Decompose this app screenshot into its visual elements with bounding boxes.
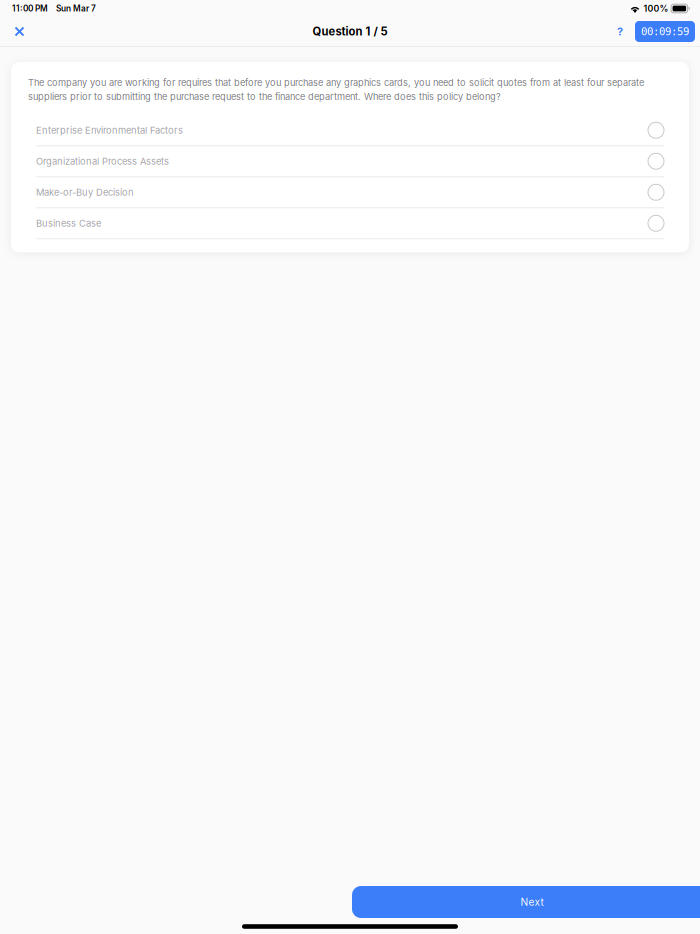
staticText: Business Case <box>36 218 101 229</box>
staticText: 00:09:59 <box>641 25 689 38</box>
button[interactable]: Help <box>610 18 630 44</box>
staticText: Make-or-Buy Decision <box>36 187 134 198</box>
button[interactable]: Business Case <box>36 208 664 239</box>
button[interactable]: Organizational Process Assets <box>36 146 664 177</box>
button[interactable]: Close <box>8 17 31 45</box>
staticText: Organizational Process Assets <box>36 156 169 167</box>
staticText: Question 1 / 5 <box>312 25 387 38</box>
button[interactable]: Enterprise Environmental Factors <box>36 115 664 146</box>
staticText: 11:00 PM <box>12 3 48 13</box>
button[interactable]: 00:09:59 <box>635 21 695 42</box>
staticText: Enterprise Environmental Factors <box>36 125 183 136</box>
staticText: ? <box>617 25 623 38</box>
staticText: The company you are working for requires… <box>28 77 644 102</box>
staticText: 100% <box>644 3 669 14</box>
staticText: Sun Mar 7 <box>56 3 96 13</box>
button[interactable]: Make-or-Buy Decision <box>36 177 664 208</box>
staticText: Next <box>520 896 543 908</box>
button[interactable]: Next <box>352 886 700 918</box>
